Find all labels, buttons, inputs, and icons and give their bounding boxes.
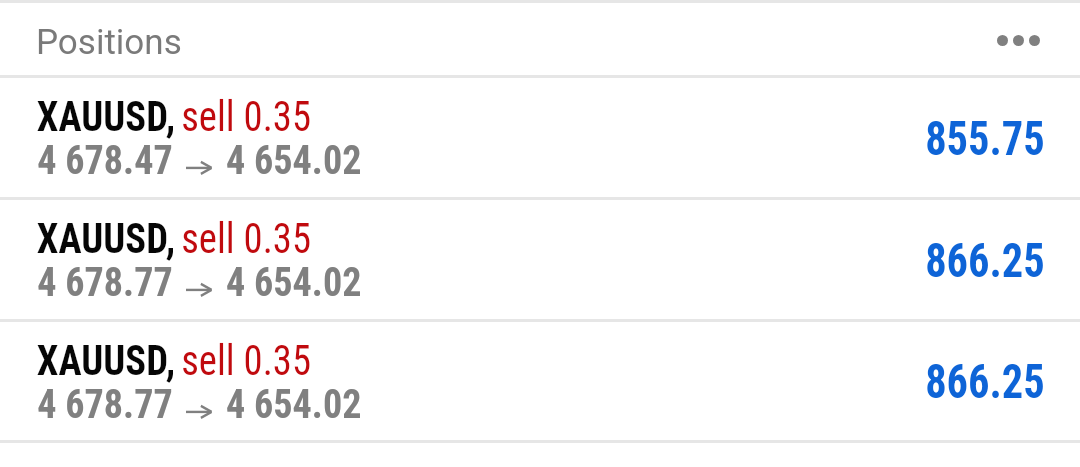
button[interactable]: XAUUSD, sell 0.35 bbox=[0, 200, 1080, 319]
staticText: XAUUSD, sell 0.35 bbox=[37, 336, 312, 385]
staticText: 4 678.47 bbox=[37, 136, 173, 184]
staticText: XAUUSD, sell 0.35 bbox=[37, 214, 312, 263]
staticText: 866.25 bbox=[925, 232, 1045, 288]
button[interactable]: More options bbox=[976, 4, 1060, 76]
staticText: 4 654.02 bbox=[226, 380, 362, 428]
staticText: 4 678.77 bbox=[37, 380, 173, 428]
staticText: 4 654.02 bbox=[226, 258, 362, 306]
staticText: 855.75 bbox=[925, 110, 1045, 166]
staticText: 866.25 bbox=[925, 353, 1045, 409]
staticText: Positions bbox=[36, 22, 182, 63]
staticText: 4 678.77 bbox=[37, 258, 173, 306]
button[interactable]: Positions bbox=[0, 3, 1080, 75]
button[interactable]: XAUUSD, sell 0.35 bbox=[0, 78, 1080, 197]
button[interactable]: XAUUSD, sell 0.35 bbox=[0, 322, 1080, 440]
staticText: 4 654.02 bbox=[226, 136, 362, 184]
staticText: XAUUSD, sell 0.35 bbox=[37, 92, 312, 141]
